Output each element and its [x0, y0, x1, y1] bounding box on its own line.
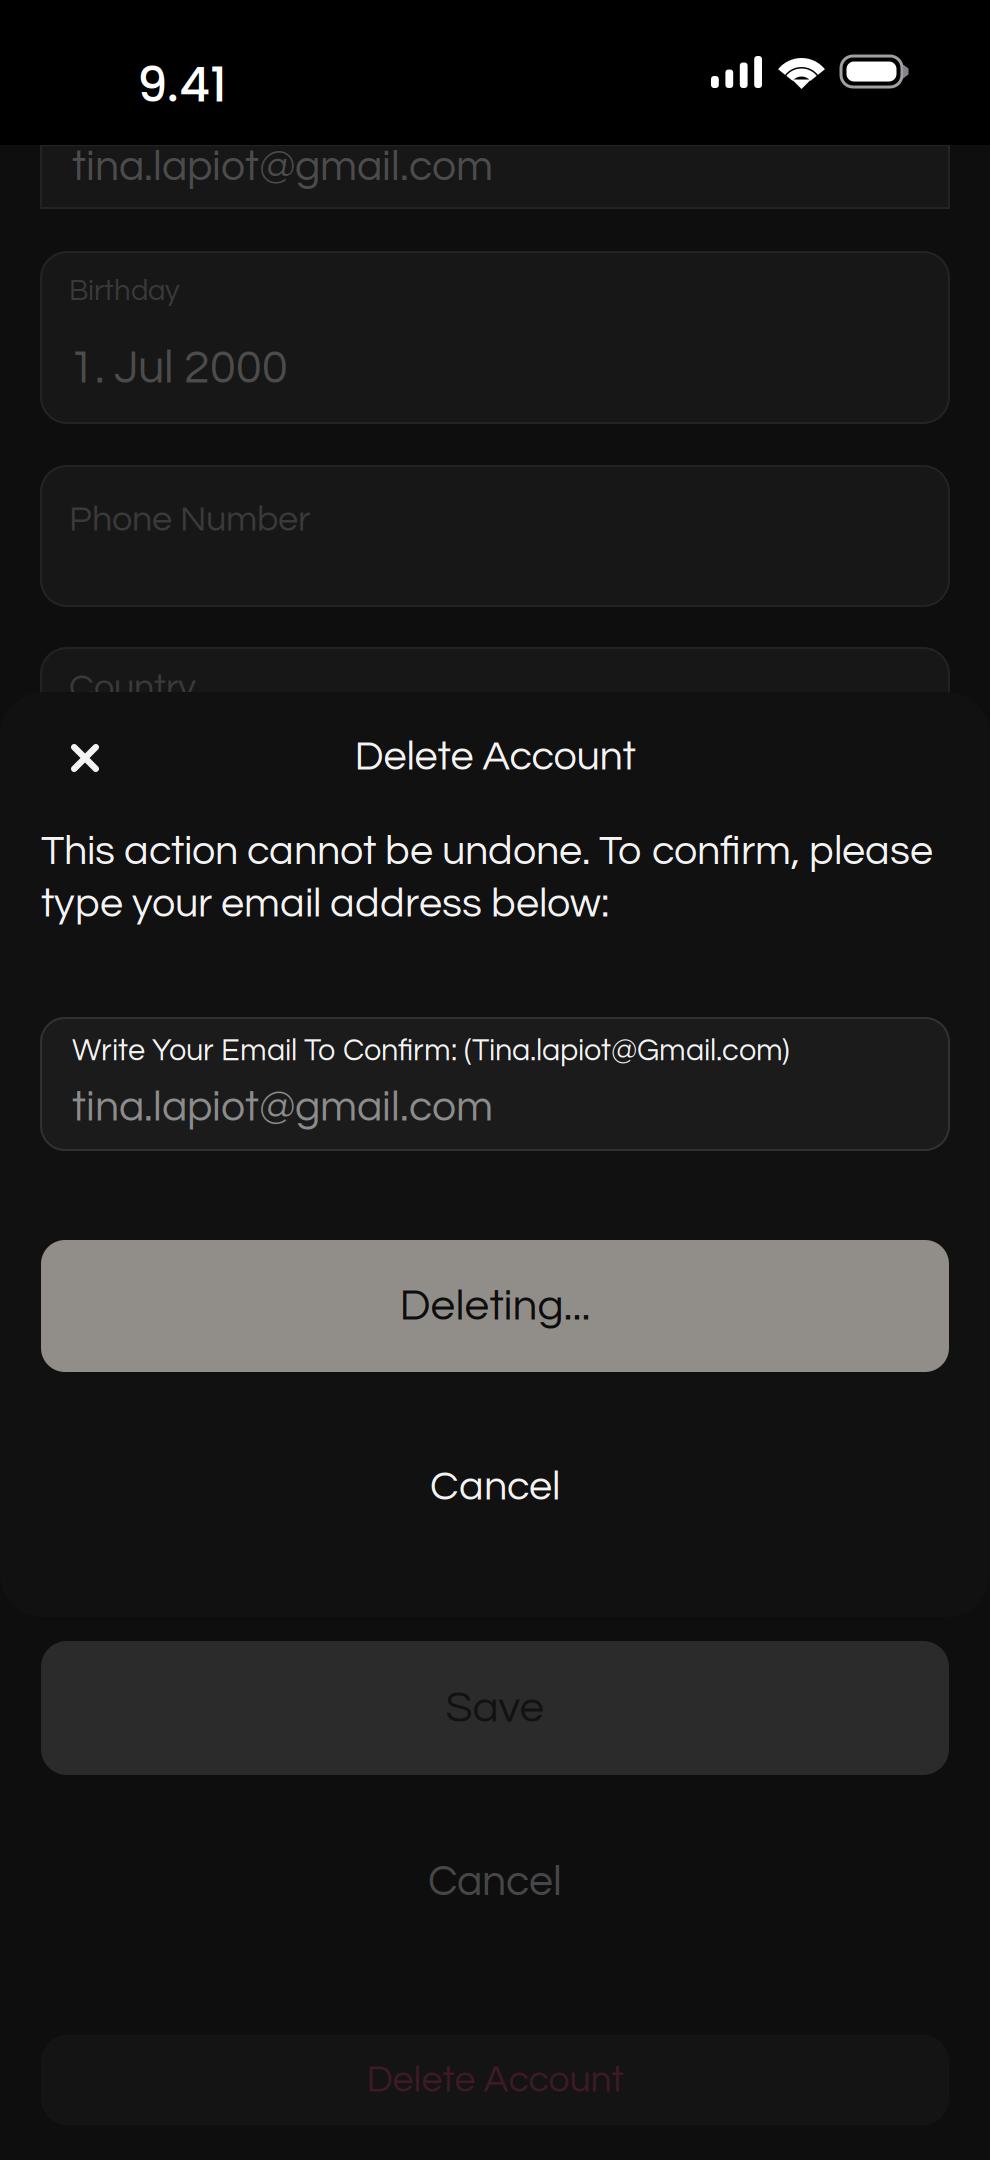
staticText: Deleting... — [399, 1283, 590, 1329]
staticText: Birthday — [69, 276, 180, 306]
button[interactable]: Deleting... — [41, 1240, 949, 1372]
staticText: This action cannot be undone. To confirm… — [41, 830, 933, 925]
staticText: tina.lapiot@gmail.com — [72, 145, 493, 189]
staticText: Save — [445, 1685, 544, 1731]
staticText: 1. Jul 2000 — [69, 344, 288, 392]
staticText: Cancel — [428, 1860, 562, 1904]
staticText: Cancel — [430, 1466, 560, 1508]
button[interactable]: Cancel — [41, 1447, 949, 1527]
staticText: Phone Number — [69, 501, 310, 538]
staticText: tina.lapiot@gmail.com — [72, 1086, 493, 1129]
button[interactable]: Delete Account — [41, 2035, 949, 2125]
button[interactable]: Close — [47, 720, 123, 796]
staticText: Write Your Email To Confirm: (Tina.lapio… — [72, 1035, 790, 1067]
staticText: 9.41 — [137, 51, 227, 118]
staticText: Delete Account — [366, 2061, 623, 2099]
staticText: Delete Account — [354, 736, 635, 778]
staticText: Country — [69, 669, 196, 706]
button[interactable]: Cancel — [41, 1851, 949, 1913]
